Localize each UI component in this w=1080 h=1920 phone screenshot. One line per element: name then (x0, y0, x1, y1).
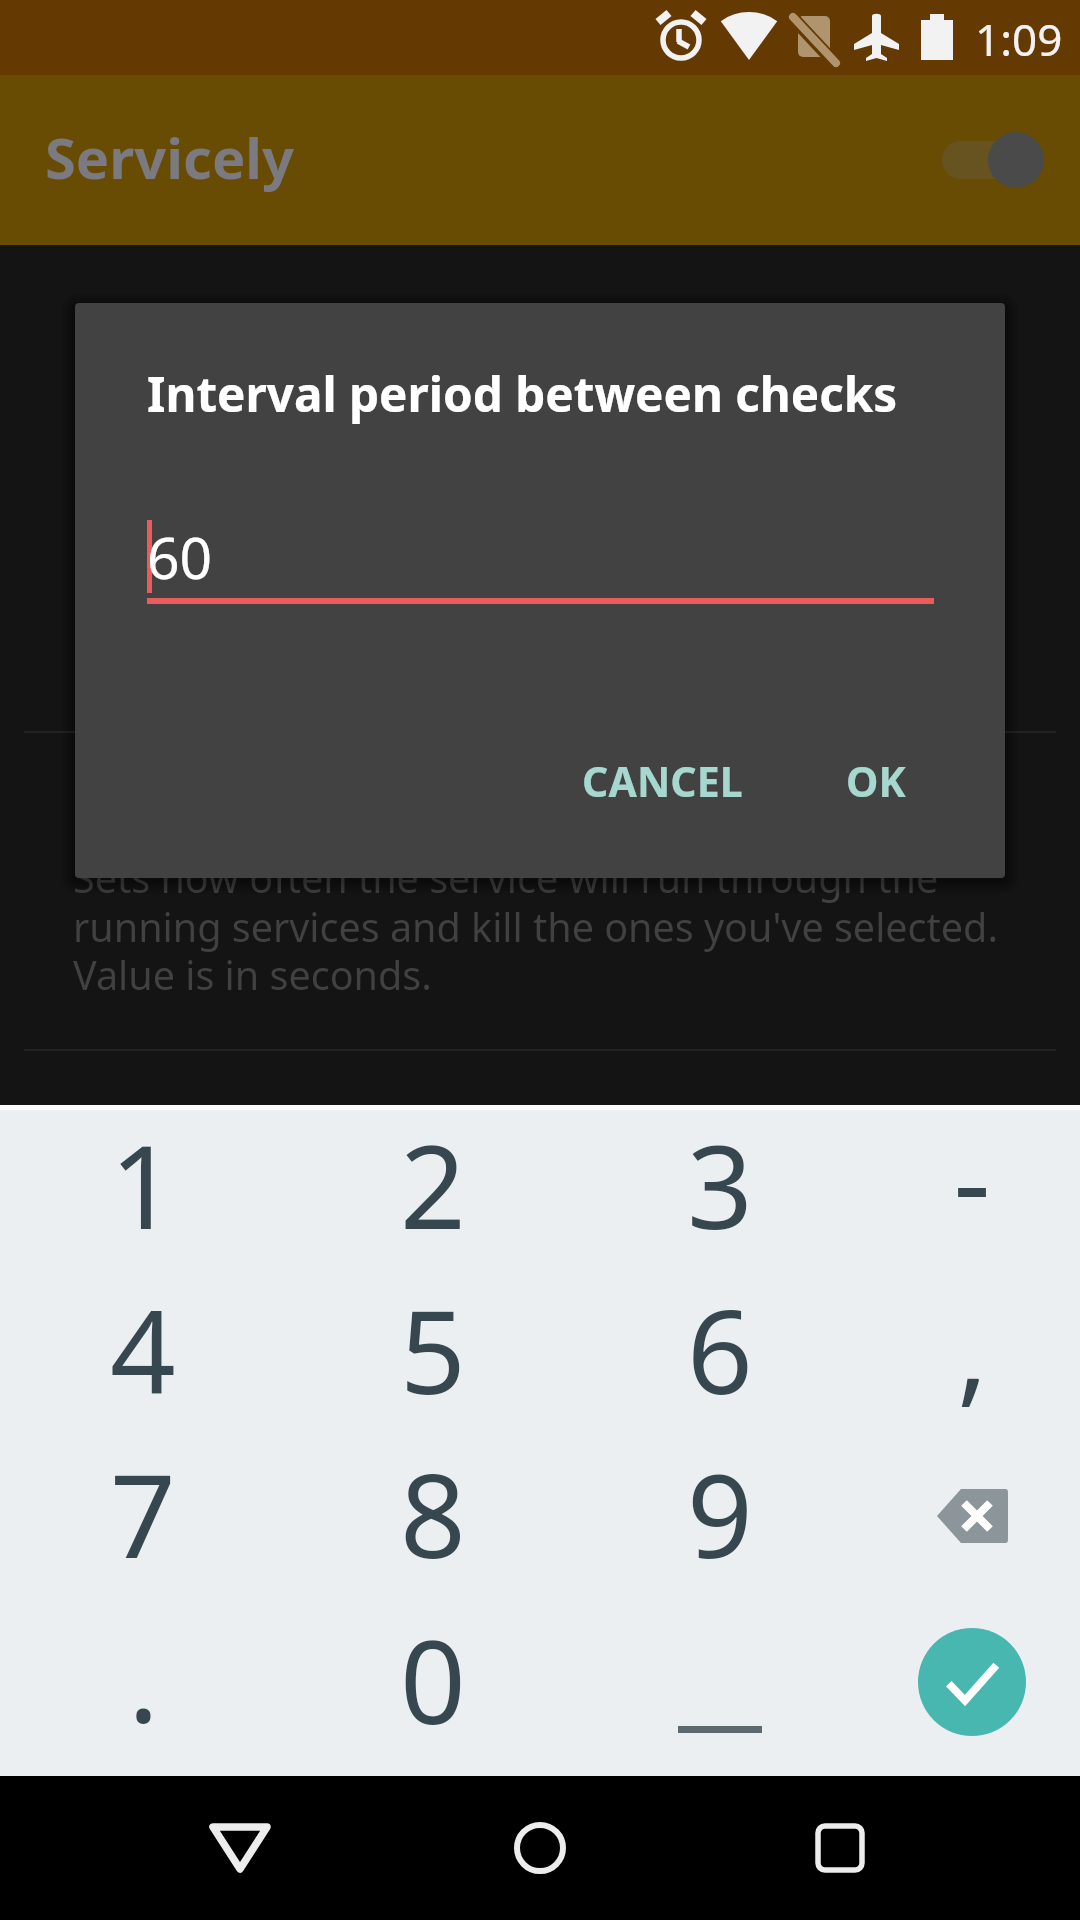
button[interactable]: 8 (313, 1433, 553, 1593)
staticText: . (128, 1599, 159, 1756)
staticText: 9 (687, 1435, 753, 1592)
staticText: 6 (687, 1271, 753, 1428)
button[interactable]: . (23, 1597, 263, 1757)
button[interactable]: Recent apps (780, 1802, 900, 1920)
staticText: 0 (400, 1601, 466, 1758)
button[interactable]: 7 (23, 1433, 263, 1593)
staticText: 2 (400, 1106, 466, 1263)
staticText: 1 (110, 1106, 176, 1263)
button[interactable]: 1 (23, 1104, 263, 1264)
staticText: 5 (400, 1271, 466, 1428)
staticText: 4 (110, 1271, 176, 1428)
button[interactable]: 5 (313, 1269, 553, 1429)
staticText: 3 (687, 1106, 753, 1263)
button[interactable]: 4 (23, 1269, 263, 1429)
button[interactable]: Home (480, 1802, 600, 1920)
staticText: Sets how often the service will run thro… (73, 851, 998, 1001)
button[interactable]: Service toggle (940, 130, 1044, 190)
staticText: 60 (147, 518, 213, 596)
button[interactable]: 9 (600, 1433, 840, 1593)
button[interactable]: Backspace (852, 1436, 1080, 1596)
button[interactable]: 60 (147, 499, 937, 609)
button[interactable]: OK (787, 731, 965, 831)
button[interactable]: 0 (313, 1599, 553, 1759)
staticText: Servicely (45, 119, 295, 195)
button[interactable]: Done (918, 1628, 1026, 1736)
staticText: - (953, 1100, 991, 1257)
button[interactable]: 2 (313, 1104, 553, 1264)
staticText: 8 (400, 1435, 466, 1592)
button[interactable]: CANCEL (509, 731, 815, 831)
staticText: OK (846, 753, 906, 809)
staticText: Interval period between checks (147, 361, 898, 426)
staticText: 7 (110, 1435, 176, 1592)
staticText: 1:09 (975, 9, 1063, 69)
staticText: CANCEL (582, 753, 743, 809)
button[interactable]: , (852, 1267, 1080, 1427)
button[interactable]: 3 (600, 1104, 840, 1264)
button[interactable]: Underscore (600, 1602, 840, 1762)
button[interactable]: 6 (600, 1269, 840, 1429)
button[interactable]: Back (180, 1802, 300, 1920)
button[interactable]: - (852, 1098, 1080, 1258)
staticText: , (957, 1269, 988, 1426)
